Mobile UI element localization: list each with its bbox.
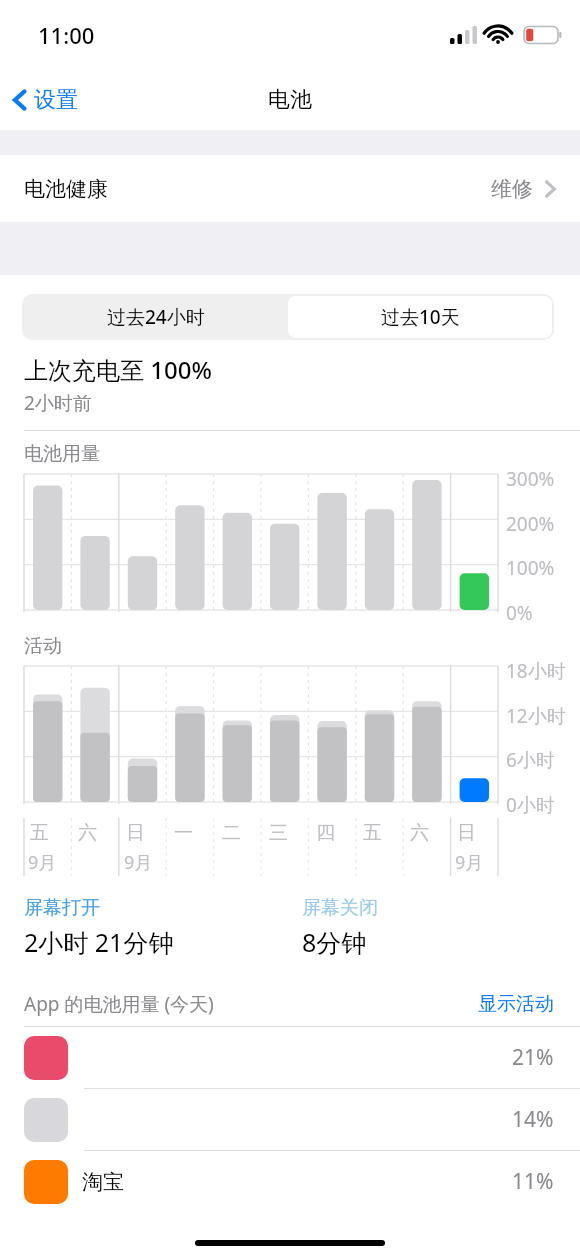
staticText: 过去10天 xyxy=(381,304,460,330)
staticText: 11:00 xyxy=(38,20,95,50)
staticText: 100% xyxy=(506,555,572,581)
staticText: 0小时 xyxy=(506,792,572,818)
staticText: 淘宝 xyxy=(82,1169,124,1195)
staticText: 上次充电至 100% xyxy=(24,353,212,386)
staticText: 屏幕打开 xyxy=(24,896,100,920)
staticText: 电池健康 xyxy=(24,176,108,202)
staticText: App 的电池用量 (今天) xyxy=(24,991,214,1017)
staticText: 8分钟 xyxy=(302,925,367,959)
staticText: 四 xyxy=(316,821,335,845)
staticText: 11% xyxy=(512,1167,554,1196)
staticText: 9月19日 xyxy=(455,850,498,880)
staticText: 14% xyxy=(512,1105,554,1134)
staticText: 五 xyxy=(363,821,382,845)
staticText: 21% xyxy=(512,1043,554,1072)
staticText: 0% xyxy=(506,600,572,626)
staticText: 活动 xyxy=(24,634,62,658)
staticText: 300% xyxy=(506,466,572,492)
button[interactable]: 显示活动 xyxy=(478,992,554,1016)
staticText: 五 xyxy=(30,821,49,845)
staticText: 200% xyxy=(506,511,572,537)
staticText: 2小时前 xyxy=(24,390,92,416)
staticText: 9月12日 xyxy=(124,850,168,880)
staticText: 设置 xyxy=(34,86,78,114)
staticText: 电池用量 xyxy=(24,442,100,466)
staticText: 电池 xyxy=(268,86,312,114)
staticText: 日 xyxy=(126,821,145,845)
button[interactable]: 14% xyxy=(0,1089,580,1150)
staticText: 六 xyxy=(410,821,429,845)
staticText: 18小时 xyxy=(506,658,572,684)
staticText: 9月10日 xyxy=(28,850,72,880)
staticText: 维修 xyxy=(491,176,533,202)
button[interactable]: 过去10天 xyxy=(288,296,552,338)
staticText: 屏幕关闭 xyxy=(302,896,378,920)
button[interactable]: 设置 xyxy=(0,80,92,120)
staticText: 三 xyxy=(269,821,288,845)
staticText: 2小时 21分钟 xyxy=(24,925,174,959)
staticText: 6小时 xyxy=(506,747,572,773)
staticText: 显示活动 xyxy=(478,992,554,1016)
button[interactable]: 电池健康 xyxy=(0,155,580,222)
button[interactable]: 淘宝 xyxy=(0,1151,580,1212)
button[interactable]: 过去24小时 xyxy=(24,296,288,338)
button[interactable]: 21% xyxy=(0,1027,580,1088)
staticText: 一 xyxy=(174,821,193,845)
staticText: 二 xyxy=(222,821,241,845)
staticText: 过去24小时 xyxy=(107,304,205,330)
staticText: 日 xyxy=(457,821,476,845)
staticText: 六 xyxy=(78,821,97,845)
staticText: 12小时 xyxy=(506,703,572,729)
